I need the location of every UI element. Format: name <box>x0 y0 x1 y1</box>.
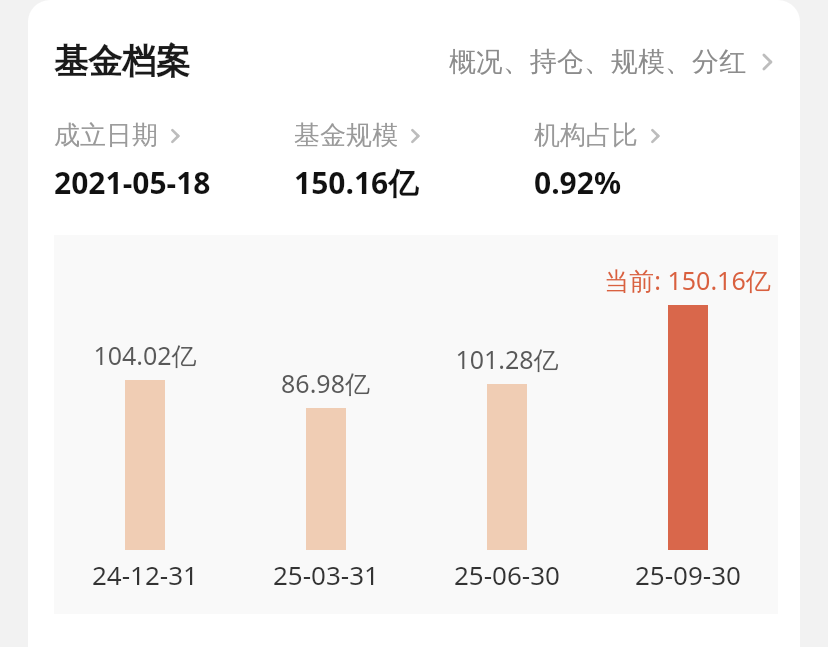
staticText: 当前: 150.16亿 <box>604 263 771 297</box>
button[interactable]: 104.02亿 <box>54 338 235 550</box>
staticText: 0.92% <box>534 162 621 203</box>
staticText: 86.98亿 <box>281 366 370 400</box>
staticText: 104.02亿 <box>93 338 197 372</box>
button[interactable]: 86.98亿 <box>235 366 416 550</box>
button[interactable]: 概况、持仓、规模、分红 <box>449 45 780 79</box>
staticText: 25-09-30 <box>635 557 741 592</box>
button[interactable]: 基金规模 <box>294 119 534 203</box>
button[interactable]: 成立日期 <box>54 119 294 203</box>
staticText: 基金规模 <box>294 119 398 152</box>
staticText: 150.16亿 <box>294 162 419 203</box>
staticText: 机构占比 <box>534 119 638 152</box>
staticText: 概况、持仓、规模、分红 <box>449 45 746 79</box>
staticText: 25-03-31 <box>273 557 379 592</box>
button[interactable]: 机构占比 <box>534 119 774 203</box>
staticText: 25-06-30 <box>454 557 560 592</box>
staticText: 24-12-31 <box>92 557 198 592</box>
staticText: 成立日期 <box>54 119 158 152</box>
button[interactable]: 当前: 150.16亿 <box>597 263 778 550</box>
button[interactable]: 101.28亿 <box>416 342 597 550</box>
staticText: 基金档案 <box>54 40 190 83</box>
staticText: 101.28亿 <box>455 342 559 376</box>
staticText: 2021-05-18 <box>54 162 211 203</box>
